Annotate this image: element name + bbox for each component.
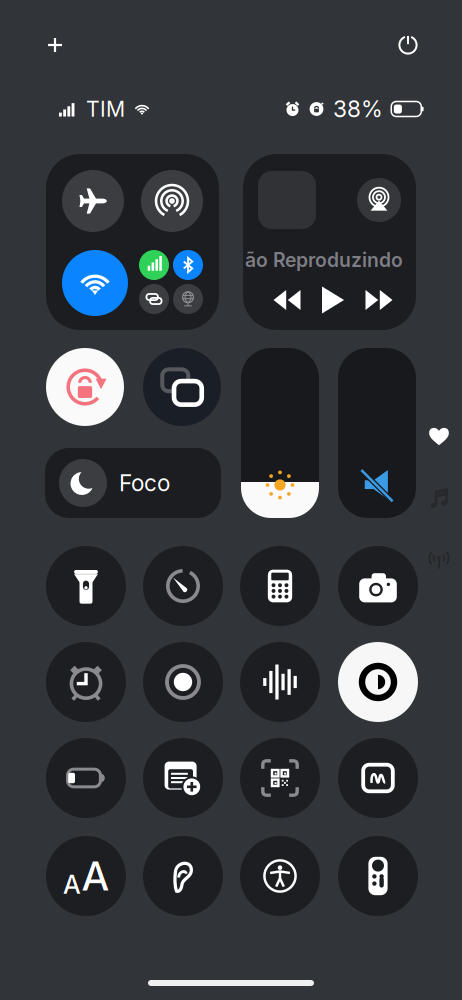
button[interactable]: Accessibility Shortcuts [240,836,320,916]
staticText: Foco [119,469,170,497]
button[interactable]: Brightness [241,348,319,518]
button[interactable]: Shazam [338,738,418,818]
button[interactable]: Calculator [240,546,320,626]
button[interactable]: Voice Memo [240,642,320,722]
button[interactable]: Airplane Mode [62,170,124,232]
button[interactable]: Timer [143,546,223,626]
button[interactable]: Live Activities [426,548,452,572]
button[interactable]: Power [393,30,423,60]
staticText: A [82,852,109,900]
button[interactable]: AirPlay [357,178,401,222]
button[interactable]: Volume [338,348,416,518]
button[interactable]: Cellular Data [139,250,169,280]
button[interactable]: Fast Forward [356,284,402,316]
button[interactable]: Personal Hotspot [173,284,203,314]
button[interactable]: Alarm [46,642,126,722]
button[interactable]: Apple TV Remote [338,836,418,916]
staticText: ão Reproduzindo [245,248,403,272]
button[interactable]: Wi-Fi [62,250,128,316]
staticText: A [63,869,81,900]
button[interactable]: Rotation Lock [46,348,124,426]
button[interactable]: Music [428,487,450,511]
button[interactable]: Dark Mode [338,642,418,722]
button[interactable]: Foco [45,448,221,518]
button[interactable]: Quick Note [143,738,223,818]
staticText: TIM [86,96,125,122]
button[interactable]: AirDrop [141,170,203,232]
button[interactable]: Play [310,284,356,316]
button[interactable]: Bluetooth [173,250,203,280]
button[interactable]: Screen Mirroring [143,348,221,426]
button[interactable]: Rewind [264,284,310,316]
button[interactable]: Flashlight [46,546,126,626]
button[interactable]: Screen Record [143,642,223,722]
button[interactable]: Low Power Mode [46,738,126,818]
button[interactable]: Add [40,30,70,60]
button[interactable]: Favourites [428,425,450,447]
button[interactable]: Camera [338,546,418,626]
staticText: 38% [333,95,383,123]
button[interactable]: Text Size [46,836,126,916]
button[interactable]: Hearing [143,836,223,916]
button[interactable]: SharePlay [139,284,169,314]
button[interactable]: Code Scanner [240,738,320,818]
